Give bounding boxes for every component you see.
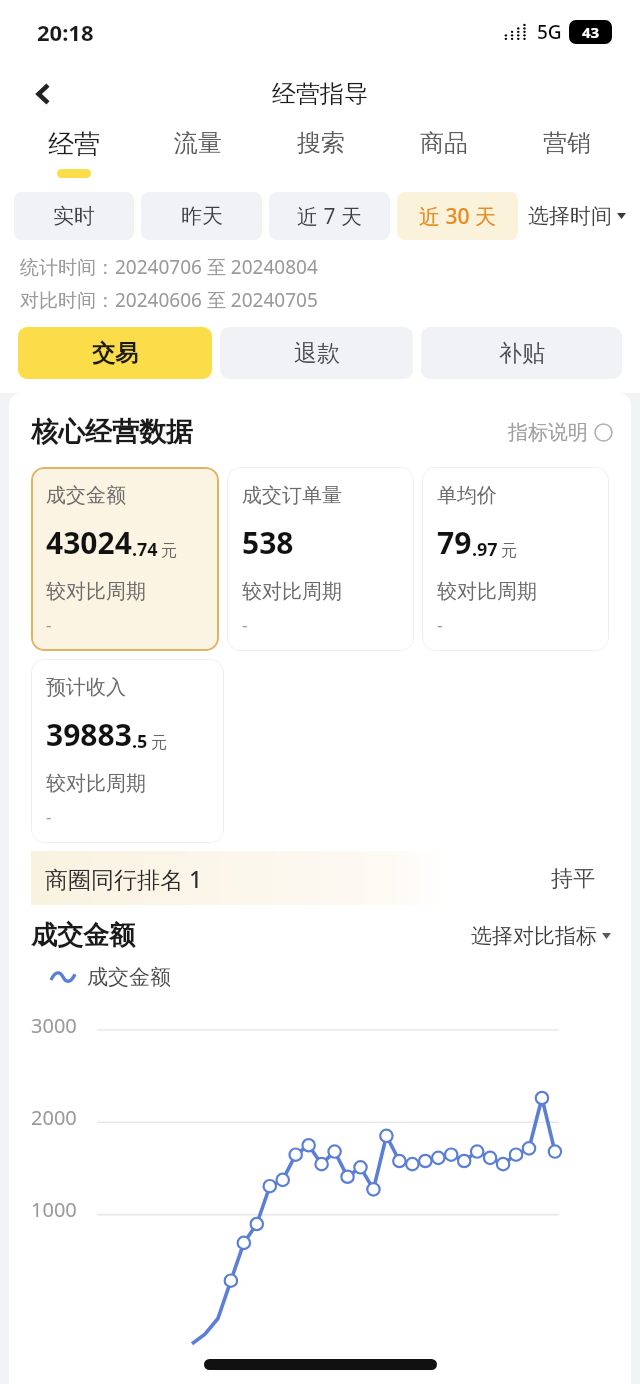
staticText: 持平 (551, 865, 595, 893)
staticText: - (46, 613, 52, 636)
staticText: 近 7 天 (297, 202, 362, 231)
staticText: .74 (132, 537, 158, 562)
staticText: 流量 (174, 128, 222, 158)
staticText: 39883 (46, 714, 132, 755)
staticText: 核心经营数据 (31, 415, 193, 449)
staticText: 成交金额 (46, 483, 126, 508)
staticText: 元 (501, 541, 517, 561)
staticText: 成交金额 (31, 919, 135, 952)
button[interactable]: 选择对比指标 (471, 923, 611, 949)
staticText: 较对比周期 (46, 771, 146, 796)
staticText: 商品 (420, 128, 468, 158)
button[interactable]: 预计收入 (31, 659, 224, 843)
staticText: 较对比周期 (242, 579, 342, 604)
button[interactable]: Back (20, 70, 68, 118)
staticText: 单均价 (437, 483, 497, 508)
staticText: 20:18 (37, 17, 94, 47)
button[interactable]: 商圈同行排名 1 (31, 851, 609, 905)
staticText: 元 (161, 541, 177, 561)
staticText: .97 (472, 537, 498, 562)
staticText: 预计收入 (46, 675, 126, 700)
staticText: .5 (132, 729, 148, 754)
staticText: 538 (242, 522, 294, 563)
staticText: 对比时间：20240606 至 20240705 (20, 287, 318, 313)
staticText: 退款 (294, 339, 340, 368)
button[interactable]: 单均价 (422, 467, 609, 651)
staticText: 较对比周期 (437, 579, 537, 604)
staticText: 近 30 天 (419, 202, 496, 231)
staticText: 统计时间：20240706 至 20240804 (20, 254, 318, 280)
staticText: 3000 (31, 1012, 77, 1039)
button[interactable]: 流量 (136, 124, 259, 186)
staticText: 经营指导 (272, 79, 368, 109)
staticText: 元 (151, 733, 167, 753)
staticText: 43 (582, 22, 600, 42)
staticText: 昨天 (181, 203, 223, 229)
button[interactable]: 近 7 天 (269, 192, 390, 240)
button[interactable]: 交易 (18, 327, 212, 379)
button[interactable]: 补贴 (421, 327, 622, 379)
button[interactable]: 选择时间 (528, 203, 626, 229)
staticText: 较对比周期 (46, 579, 146, 604)
button[interactable]: 退款 (220, 327, 413, 379)
staticText: 经营 (48, 128, 100, 161)
staticText: 实时 (53, 203, 95, 229)
staticText: 79 (437, 522, 472, 563)
staticText: - (46, 805, 52, 828)
staticText: 营销 (543, 128, 591, 158)
staticText: - (242, 613, 248, 636)
staticText: 补贴 (499, 339, 545, 368)
button[interactable]: 实时 (14, 192, 134, 240)
staticText: 成交金额 (87, 964, 171, 990)
button[interactable]: 昨天 (141, 192, 262, 240)
staticText: 成交订单量 (242, 483, 342, 508)
button[interactable]: 成交金额 (31, 467, 219, 651)
staticText: 搜索 (297, 128, 345, 158)
button[interactable]: 营销 (505, 124, 628, 186)
button[interactable]: 商品 (382, 124, 505, 186)
button[interactable]: 成交订单量 (227, 467, 414, 651)
staticText: 选择时间 (528, 203, 612, 229)
button[interactable]: 经营 (12, 124, 136, 186)
staticText: 商圈同行排名 1 (45, 863, 203, 894)
button[interactable]: 搜索 (259, 124, 382, 186)
staticText: 43024 (46, 522, 132, 563)
staticText: - (437, 613, 443, 636)
staticText: 交易 (92, 339, 138, 368)
staticText: 2000 (31, 1104, 77, 1131)
staticText: 5G (537, 19, 562, 45)
button[interactable]: 近 30 天 (397, 192, 518, 240)
staticText: 选择对比指标 (471, 923, 597, 949)
button[interactable]: 指标说明 (508, 420, 613, 445)
staticText: 1000 (31, 1196, 77, 1223)
staticText: 指标说明 (508, 420, 588, 445)
